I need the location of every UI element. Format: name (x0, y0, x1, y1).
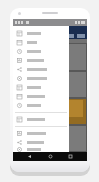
button[interactable]: Menu icon (13, 38, 69, 47)
other: Menu icon (17, 40, 22, 45)
other: Menu icon (17, 147, 22, 152)
button[interactable]: Menu icon (13, 47, 69, 56)
button[interactable]: Menu icon (13, 101, 69, 110)
other: Menu icon (17, 94, 22, 99)
button[interactable]: Menu icon (13, 29, 69, 38)
other: Menu icon (17, 103, 22, 108)
other: Menu icon (17, 131, 22, 136)
button[interactable]: Menu icon (13, 56, 69, 65)
button[interactable]: Menu icon (13, 92, 69, 101)
other: Menu icon (17, 58, 22, 63)
button[interactable]: Menu icon (13, 115, 69, 124)
other: Menu icon (17, 49, 22, 54)
button[interactable]: Menu icon (13, 74, 69, 83)
other: Menu icon (17, 76, 22, 81)
button[interactable]: Menu icon (13, 138, 69, 147)
other: Menu icon (17, 67, 22, 72)
button[interactable]: Menu icon (13, 147, 69, 152)
button[interactable]: Menu icon (13, 83, 69, 92)
other: Menu icon (17, 140, 22, 145)
button[interactable]: Menu icon (13, 129, 69, 138)
button[interactable]: Menu icon (13, 65, 69, 74)
other: Menu icon (17, 85, 22, 90)
button[interactable]: Home (46, 152, 55, 161)
other: Menu icon (17, 31, 22, 36)
other: Menu icon (17, 117, 22, 122)
button[interactable]: Back (25, 152, 34, 161)
button[interactable]: Recent apps (66, 152, 75, 161)
